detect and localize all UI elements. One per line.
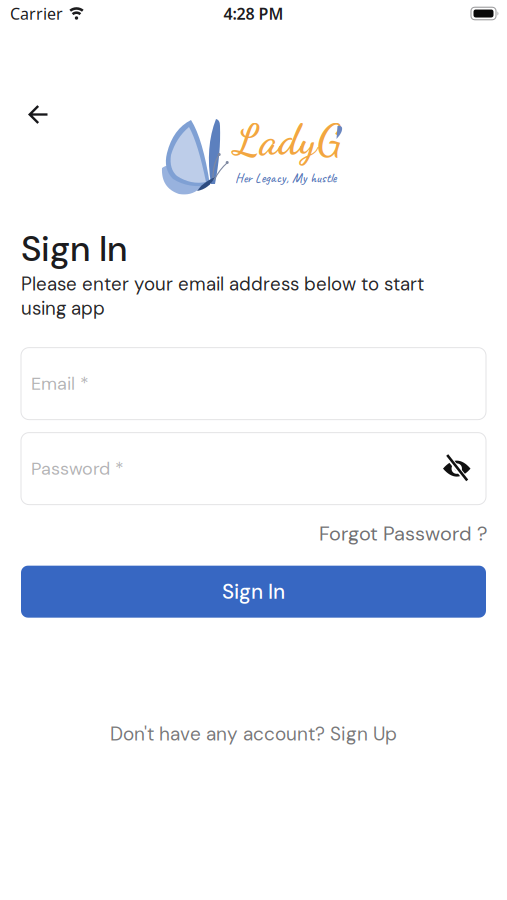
- staticText: Please enter your email address below to…: [21, 272, 424, 321]
- button[interactable]: Don't have any account? Sign Up: [110, 722, 397, 746]
- button[interactable]: [443, 458, 470, 480]
- staticText: LadyG: [234, 115, 342, 165]
- staticText: Sign In: [21, 226, 127, 272]
- staticText: 4:28 PM: [223, 3, 283, 24]
- staticText: Her Legacy, My hustle: [235, 169, 336, 186]
- staticText: Password *: [31, 457, 124, 480]
- button[interactable]: Email *: [21, 348, 486, 420]
- staticText: Don't have any account? Sign Up: [110, 722, 397, 746]
- button[interactable]: Sign In: [21, 566, 486, 618]
- staticText: Sign In: [222, 578, 285, 605]
- button[interactable]: Forgot Password ?: [319, 521, 487, 547]
- staticText: Email *: [31, 372, 89, 395]
- staticText: Carrier: [10, 3, 63, 24]
- button[interactable]: [29, 105, 48, 124]
- button[interactable]: Password *: [21, 433, 486, 505]
- staticText: Forgot Password ?: [319, 521, 487, 547]
